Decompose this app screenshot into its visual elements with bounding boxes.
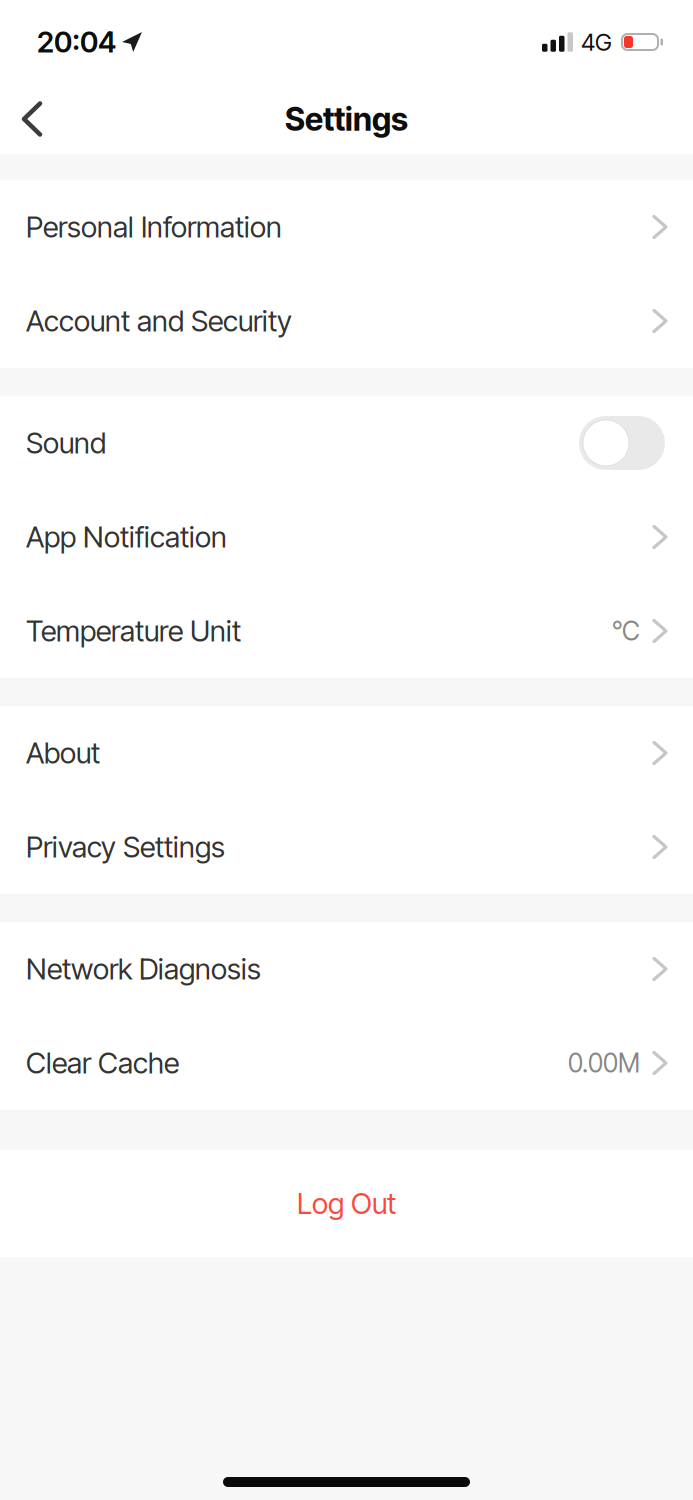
button[interactable]: Sound xyxy=(579,416,665,470)
staticText: Log Out xyxy=(297,1186,396,1221)
staticText: 0.00M xyxy=(568,1047,640,1079)
staticText: Personal Information xyxy=(26,209,282,245)
staticText: Sound xyxy=(26,425,106,461)
staticText: Account and Security xyxy=(26,303,292,339)
button[interactable]: About xyxy=(0,706,693,800)
staticText: App Notification xyxy=(26,519,227,555)
button[interactable]: Clear Cache xyxy=(0,1016,693,1110)
staticText: °C xyxy=(612,615,640,647)
staticText: 4G xyxy=(581,27,612,56)
button[interactable]: Account and Security xyxy=(0,274,693,368)
staticText: Settings xyxy=(285,100,408,138)
staticText: Privacy Settings xyxy=(26,829,225,865)
staticText: About xyxy=(26,735,100,771)
button[interactable]: Back xyxy=(0,87,60,150)
button[interactable]: Privacy Settings xyxy=(0,800,693,894)
staticText: Temperature Unit xyxy=(26,613,241,649)
button[interactable]: Log Out xyxy=(0,1150,693,1257)
button[interactable]: Network Diagnosis xyxy=(0,922,693,1016)
button[interactable]: Temperature Unit xyxy=(0,584,693,678)
staticText: Clear Cache xyxy=(26,1045,179,1081)
staticText: 20:04 xyxy=(37,24,116,60)
button[interactable]: App Notification xyxy=(0,490,693,584)
button[interactable]: Personal Information xyxy=(0,180,693,274)
staticText: Network Diagnosis xyxy=(26,951,261,987)
